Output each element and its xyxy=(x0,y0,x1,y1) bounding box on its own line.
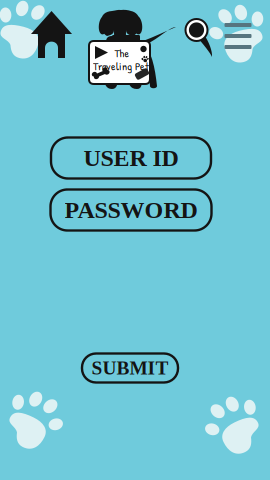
button[interactable]: USER ID xyxy=(51,137,211,178)
staticText: USER ID xyxy=(83,145,178,171)
button[interactable]: PASSWORD xyxy=(50,189,211,230)
staticText: PASSWORD xyxy=(64,197,197,223)
staticText: The xyxy=(114,45,129,61)
staticText: Traveling Pet xyxy=(93,58,149,74)
button[interactable]: SUBMIT xyxy=(82,353,178,382)
button[interactable]: Menu xyxy=(218,16,258,56)
button[interactable]: Search xyxy=(0,0,270,480)
staticText: SUBMIT xyxy=(91,357,168,379)
